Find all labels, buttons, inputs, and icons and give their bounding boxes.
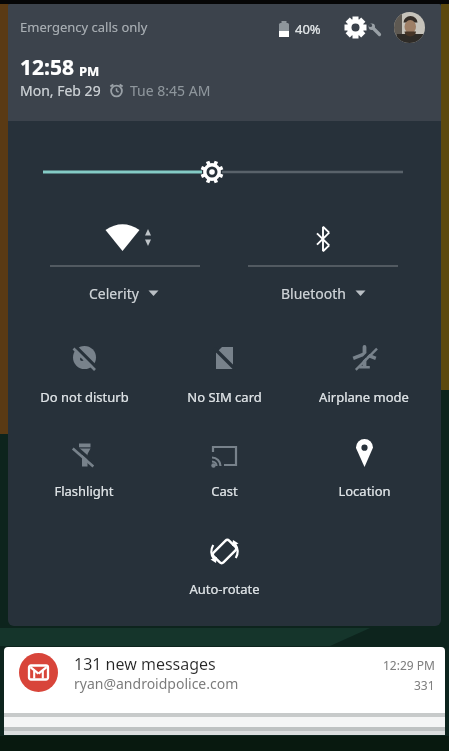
button[interactable]	[28, 214, 220, 309]
button[interactable]	[154, 519, 294, 604]
staticText: Flashlight	[54, 482, 114, 500]
staticText: 12:58	[20, 53, 74, 82]
staticText: Location	[338, 482, 391, 500]
button[interactable]: 131 new messages	[4, 647, 445, 713]
staticText: ryan@androidpolice.com	[74, 674, 239, 693]
staticText: PM	[79, 62, 100, 80]
staticText: No SIM card	[187, 388, 262, 406]
staticText: Auto-rotate	[189, 580, 260, 598]
button[interactable]	[154, 329, 294, 414]
button[interactable]	[340, 12, 378, 50]
button[interactable]	[394, 12, 425, 43]
staticText: Airplane mode	[319, 388, 409, 406]
staticText: 131 new messages	[74, 653, 216, 675]
staticText: Do not disturb	[40, 388, 129, 406]
staticText: Bluetooth	[281, 284, 346, 303]
button[interactable]	[14, 329, 154, 414]
staticText: Tue 8:45 AM	[130, 81, 211, 100]
staticText: 331	[414, 677, 435, 692]
staticText: Cast	[211, 482, 238, 500]
staticText: 12:29 PM	[383, 657, 435, 672]
staticText: Emergency calls only	[20, 18, 148, 36]
staticText: Celerity	[89, 284, 139, 303]
button[interactable]	[294, 329, 434, 414]
button[interactable]	[14, 424, 154, 509]
button[interactable]	[154, 424, 294, 509]
staticText: Mon, Feb 29	[20, 81, 101, 100]
button[interactable]	[229, 214, 421, 309]
staticText: 40%	[295, 20, 321, 38]
button[interactable]	[294, 424, 434, 509]
